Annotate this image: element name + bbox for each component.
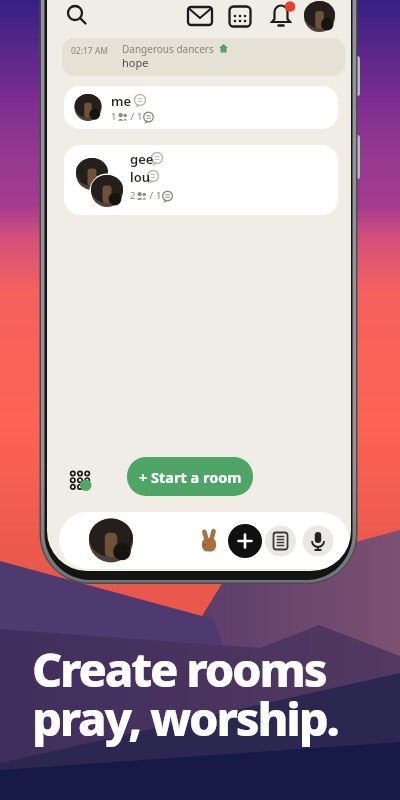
button[interactable] [67,464,97,494]
button[interactable]: gee [64,145,338,215]
button[interactable]: + Start a room [127,457,253,496]
button[interactable] [226,1,254,31]
staticText: Dangerous dancers [122,42,214,56]
button[interactable] [303,526,334,557]
staticText: hope [122,55,149,70]
staticText: 1 [137,110,143,123]
staticText: lou [130,168,150,186]
button[interactable] [266,1,294,31]
button[interactable] [197,529,221,553]
staticText: 1 [111,110,117,123]
button[interactable]: me [64,86,338,129]
staticText: 2 [130,189,136,202]
button[interactable] [228,524,262,558]
staticText: + Start a room [139,467,242,487]
button[interactable] [185,1,215,31]
button[interactable] [61,0,91,30]
staticText: pray, worship. [32,686,338,750]
button[interactable] [265,526,296,557]
button[interactable]: 02:17 AM [62,38,345,76]
staticText: 02:17 AM [71,45,109,57]
staticText: / [128,110,137,123]
button[interactable] [304,1,335,32]
button[interactable] [59,512,349,569]
button[interactable] [89,518,133,562]
staticText: Create rooms [32,637,326,701]
staticText: 1 [156,189,162,202]
staticText: / [147,189,156,202]
staticText: gee [130,150,154,168]
staticText: me [111,92,132,110]
